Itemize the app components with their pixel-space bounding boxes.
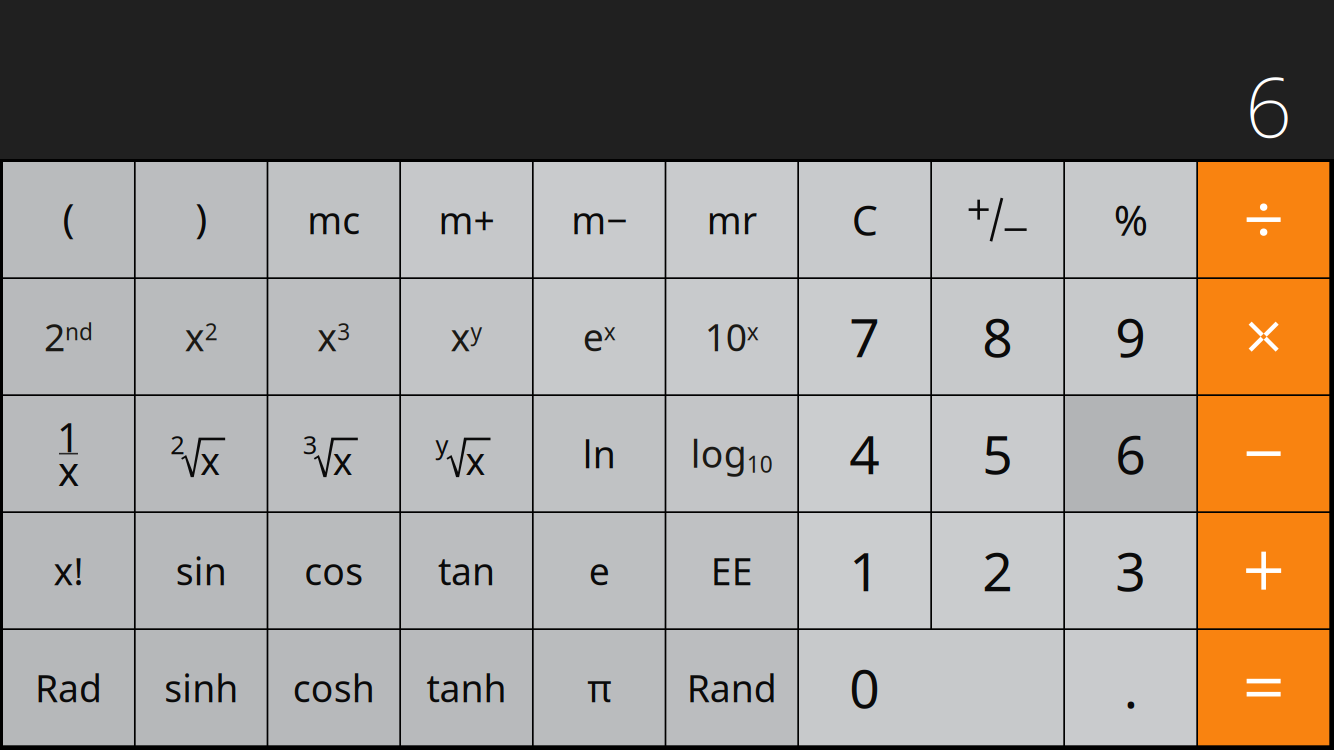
staticText: mr xyxy=(707,195,757,244)
button[interactable]: tanh xyxy=(401,630,532,745)
button[interactable]: Equals xyxy=(1198,630,1329,745)
button[interactable]: 7 xyxy=(799,279,930,394)
button[interactable]: EE xyxy=(666,513,797,628)
staticText: mc xyxy=(307,195,360,244)
staticText: x xyxy=(58,444,79,497)
staticText: Rad xyxy=(35,663,102,712)
staticText: x3 xyxy=(317,312,350,361)
staticText: sinh xyxy=(164,663,238,712)
staticText: m− xyxy=(571,195,627,244)
staticText: tanh xyxy=(426,663,506,712)
button[interactable]: Plus minus xyxy=(932,162,1063,277)
button[interactable]: mr xyxy=(666,162,797,277)
staticText: x! xyxy=(53,546,83,595)
button[interactable]: y-th root xyxy=(401,396,532,511)
staticText: π xyxy=(587,663,611,712)
staticText: C xyxy=(852,192,878,247)
button[interactable]: Rand xyxy=(666,630,797,745)
button[interactable]: sin xyxy=(136,513,267,628)
button[interactable]: tan xyxy=(401,513,532,628)
button[interactable]: Open parenthesis xyxy=(3,162,134,277)
staticText: 3 xyxy=(1115,535,1146,606)
button[interactable]: xy xyxy=(401,279,532,394)
staticText: e xyxy=(589,546,610,595)
staticText: 6 xyxy=(1115,418,1146,489)
button[interactable]: 5 xyxy=(932,396,1063,511)
button[interactable]: m+ xyxy=(401,162,532,277)
staticText: 1 xyxy=(849,535,880,606)
staticText: 1 xyxy=(57,410,80,463)
button[interactable]: m− xyxy=(534,162,665,277)
button[interactable]: 6 xyxy=(1065,396,1196,511)
staticText: ) xyxy=(195,191,207,244)
staticText: ex xyxy=(583,312,616,361)
staticText: log10 xyxy=(691,428,773,479)
staticText: sin xyxy=(176,546,227,595)
button[interactable]: π xyxy=(534,630,665,745)
button[interactable]: 1 xyxy=(799,513,930,628)
staticText: x2 xyxy=(185,312,218,361)
button[interactable]: x3 xyxy=(268,279,399,394)
button[interactable]: Close parenthesis xyxy=(136,162,267,277)
staticText: cos xyxy=(304,546,363,595)
staticText: . xyxy=(1124,652,1138,723)
button[interactable]: Plus xyxy=(1198,513,1329,628)
button[interactable]: cosh xyxy=(268,630,399,745)
staticText: 10x xyxy=(705,312,759,361)
staticText: 2 xyxy=(170,428,184,461)
staticText: x xyxy=(200,436,220,485)
button[interactable]: Divide xyxy=(1198,162,1329,277)
staticText: % xyxy=(1114,192,1148,247)
staticText: 0 xyxy=(849,652,880,723)
button[interactable]: ln xyxy=(534,396,665,511)
button[interactable]: 2nd xyxy=(3,279,134,394)
staticText: Rand xyxy=(687,663,777,712)
button[interactable]: sinh xyxy=(136,630,267,745)
button[interactable]: x2 xyxy=(136,279,267,394)
staticText: 2 xyxy=(982,535,1013,606)
button[interactable]: 0 xyxy=(799,630,1063,745)
button[interactable]: x! xyxy=(3,513,134,628)
staticText: EE xyxy=(711,546,753,595)
button[interactable]: Rad xyxy=(3,630,134,745)
button[interactable]: 8 xyxy=(932,279,1063,394)
button[interactable]: Square root xyxy=(136,396,267,511)
staticText: 9 xyxy=(1115,301,1146,372)
button[interactable]: Decimal point xyxy=(1065,630,1196,745)
staticText: xy xyxy=(450,312,482,361)
staticText: 4 xyxy=(849,418,880,489)
button[interactable]: 2 xyxy=(932,513,1063,628)
button[interactable]: Minus xyxy=(1198,396,1329,511)
button[interactable]: Cube root xyxy=(268,396,399,511)
button[interactable]: % xyxy=(1065,162,1196,277)
staticText: ln xyxy=(583,429,616,478)
button[interactable]: log10 xyxy=(666,396,797,511)
staticText: 3 xyxy=(303,428,317,461)
staticText: y xyxy=(435,428,448,461)
button[interactable]: cos xyxy=(268,513,399,628)
button[interactable]: 3 xyxy=(1065,513,1196,628)
button[interactable]: 10x xyxy=(666,279,797,394)
staticText: 6 xyxy=(1245,50,1292,160)
button[interactable]: C xyxy=(799,162,930,277)
button[interactable]: mc xyxy=(268,162,399,277)
button[interactable]: ex xyxy=(534,279,665,394)
staticText: 2nd xyxy=(44,312,93,361)
button[interactable]: One over x xyxy=(3,396,134,511)
staticText: cosh xyxy=(293,663,375,712)
button[interactable]: e xyxy=(534,513,665,628)
button[interactable]: 9 xyxy=(1065,279,1196,394)
staticText: 7 xyxy=(849,301,880,372)
staticText: x xyxy=(465,436,485,485)
button[interactable]: 4 xyxy=(799,396,930,511)
staticText: 8 xyxy=(982,301,1013,372)
staticText: tan xyxy=(438,546,495,595)
staticText: 5 xyxy=(982,418,1013,489)
staticText: x xyxy=(333,436,353,485)
staticText: m+ xyxy=(438,195,494,244)
staticText: ( xyxy=(62,191,74,244)
button[interactable]: Multiply xyxy=(1198,279,1329,394)
